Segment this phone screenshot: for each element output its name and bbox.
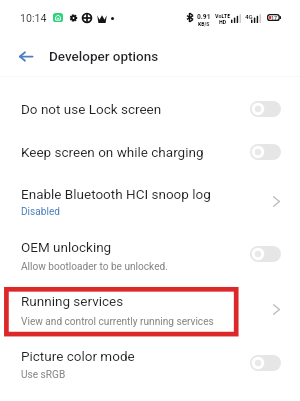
- staticText: Picture color mode: [21, 348, 135, 364]
- staticText: Use sRGB: [21, 369, 66, 381]
- button[interactable]: OEM unlocking: [0, 227, 300, 281]
- button[interactable]: Toggle: [250, 355, 281, 371]
- staticText: Keep screen on while charging: [21, 144, 204, 160]
- button[interactable]: Back: [13, 43, 39, 69]
- staticText: Enable Bluetooth HCI snoop log: [21, 186, 211, 202]
- staticText: HD: [219, 19, 227, 25]
- button[interactable]: Do not use Lock screen: [0, 87, 300, 130]
- button[interactable]: Toggle: [250, 144, 281, 160]
- button[interactable]: Toggle: [250, 101, 281, 117]
- button[interactable]: Running services: [0, 281, 300, 335]
- staticText: VoLTE: [215, 13, 231, 19]
- staticText: OEM unlocking: [21, 239, 112, 255]
- button[interactable]: Keep screen on while charging: [0, 130, 300, 173]
- button[interactable]: Picture color mode: [0, 336, 300, 390]
- staticText: View and control currently running servi…: [21, 316, 214, 328]
- staticText: KB/S: [198, 21, 210, 27]
- button[interactable]: Enable Bluetooth HCI snoop log: [0, 173, 300, 227]
- staticText: 17: [271, 15, 278, 21]
- staticText: 10:14: [20, 12, 47, 24]
- staticText: 4G: [245, 13, 253, 20]
- staticText: Do not use Lock screen: [21, 101, 162, 117]
- staticText: 0.91: [197, 13, 211, 21]
- button[interactable]: Developer options: [43, 41, 168, 71]
- staticText: Allow bootloader to be unlocked.: [21, 261, 168, 273]
- staticText: Developer options: [49, 48, 159, 64]
- staticText: Running services: [21, 293, 124, 309]
- staticText: Disabled: [21, 206, 60, 218]
- button[interactable]: Toggle: [250, 246, 281, 262]
